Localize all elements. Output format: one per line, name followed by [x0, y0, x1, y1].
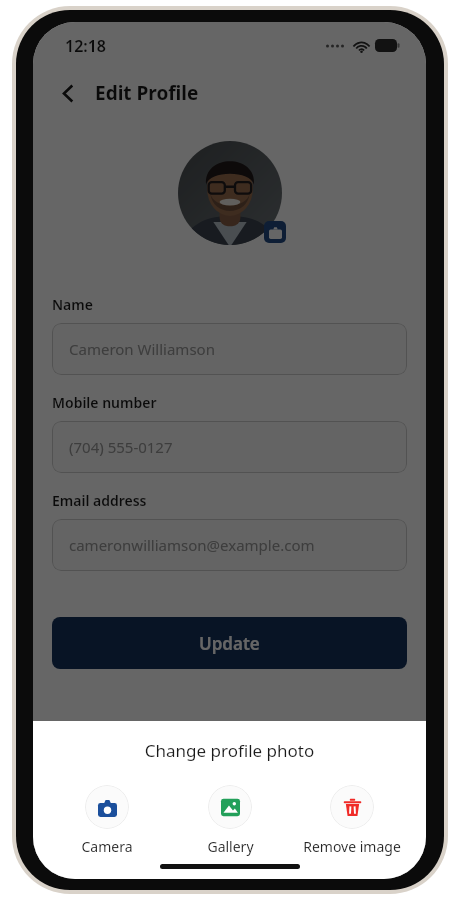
staticText: Camera: [81, 837, 133, 856]
button[interactable]: Remove image: [296, 785, 408, 856]
button[interactable]: Profile photo: [178, 141, 282, 245]
button[interactable]: Change photo: [264, 221, 286, 243]
staticText: Change profile photo: [33, 739, 426, 762]
staticText: cameronwilliamson@example.com: [69, 535, 315, 555]
staticText: Email address: [52, 491, 147, 510]
button[interactable]: cameronwilliamson@example.com: [52, 519, 407, 571]
staticText: Mobile number: [52, 393, 157, 412]
staticText: 12:18: [65, 35, 107, 57]
staticText: (704) 555-0127: [69, 437, 173, 457]
button[interactable]: Back: [50, 75, 86, 111]
staticText: Update: [199, 632, 260, 655]
staticText: Remove image: [303, 837, 401, 856]
staticText: Edit Profile: [95, 80, 199, 106]
button[interactable]: Update: [52, 617, 407, 669]
button[interactable]: Cameron Williamson: [52, 323, 407, 375]
button[interactable]: Gallery: [174, 785, 286, 856]
staticText: Gallery: [207, 837, 254, 856]
button[interactable]: (704) 555-0127: [52, 421, 407, 473]
staticText: Cameron Williamson: [69, 339, 215, 359]
button[interactable]: Camera: [51, 785, 163, 856]
staticText: Name: [52, 295, 93, 314]
